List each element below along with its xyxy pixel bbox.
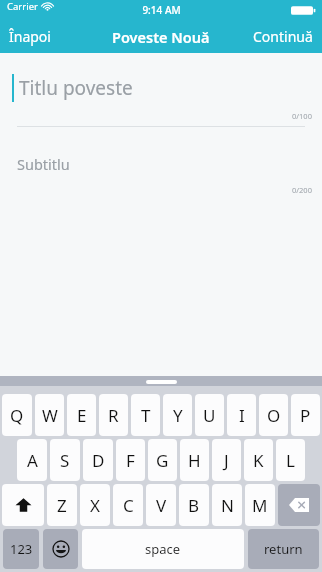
staticText: 0/100 (292, 111, 312, 121)
button[interactable]: Q (2, 394, 32, 436)
staticText: Poveste Nouă (112, 27, 210, 47)
staticText: L (286, 449, 295, 472)
button[interactable]: J (212, 439, 241, 481)
staticText: C (123, 494, 134, 517)
staticText: Q (10, 404, 24, 427)
button[interactable]: P (291, 394, 320, 436)
staticText: Y (173, 404, 183, 427)
staticText: Continuă (253, 27, 313, 46)
staticText: I (239, 404, 245, 427)
staticText: B (188, 494, 200, 517)
button[interactable]: W (35, 394, 64, 436)
staticText: Titlu poveste (19, 75, 133, 101)
button[interactable]: X (80, 484, 110, 526)
staticText: A (27, 449, 38, 472)
staticText: Carrier (7, 0, 38, 13)
staticText: return (264, 540, 303, 558)
button[interactable]: I (227, 394, 256, 436)
button[interactable]: Subtitlu (0, 127, 322, 200)
staticText: W (42, 404, 58, 427)
button[interactable]: return (248, 529, 319, 569)
staticText: H (188, 449, 201, 472)
staticText: Subtitlu (17, 154, 70, 174)
staticText: U (203, 404, 216, 427)
button[interactable]: Titlu poveste (0, 53, 322, 126)
button[interactable]: O (259, 394, 288, 436)
staticText: K (253, 449, 264, 472)
button[interactable]: Shift (2, 484, 44, 526)
button[interactable]: S (50, 439, 80, 481)
staticText: J (224, 449, 229, 472)
button[interactable]: N (212, 484, 242, 526)
staticText: 9:14 AM (142, 3, 181, 17)
staticText: 123 (10, 540, 33, 558)
staticText: T (141, 404, 151, 427)
button[interactable]: V (146, 484, 176, 526)
button[interactable]: Y (163, 394, 192, 436)
button[interactable]: Continuă (244, 21, 322, 52)
staticText: D (92, 449, 105, 472)
button[interactable]: G (148, 439, 177, 481)
button[interactable]: U (195, 394, 224, 436)
button[interactable]: Backspace (278, 484, 320, 526)
staticText: R (108, 404, 119, 427)
staticText: N (221, 494, 234, 517)
button[interactable]: K (244, 439, 273, 481)
button[interactable]: T (131, 394, 160, 436)
staticText: G (156, 449, 169, 472)
staticText: S (60, 449, 70, 472)
staticText: V (156, 494, 167, 517)
button[interactable]: D (83, 439, 113, 481)
button[interactable]: E (67, 394, 96, 436)
button[interactable]: C (113, 484, 143, 526)
button[interactable]: B (179, 484, 209, 526)
button[interactable]: Înapoi (0, 21, 60, 52)
staticText: M (252, 494, 268, 517)
staticText: O (267, 404, 281, 427)
button[interactable]: space (82, 529, 244, 569)
staticText: Z (57, 494, 67, 517)
staticText: Înapoi (9, 27, 51, 46)
button[interactable]: F (116, 439, 145, 481)
button[interactable]: Hide keyboard (146, 380, 177, 384)
button[interactable]: Z (47, 484, 77, 526)
staticText: E (77, 404, 87, 427)
button[interactable]: Emoji (43, 529, 78, 569)
button[interactable]: R (99, 394, 128, 436)
button[interactable]: L (276, 439, 305, 481)
staticText: 0/200 (292, 185, 312, 195)
button[interactable]: 123 (3, 529, 39, 569)
button[interactable]: H (180, 439, 209, 481)
button[interactable]: A (17, 439, 47, 481)
button[interactable]: M (245, 484, 275, 526)
staticText: F (126, 449, 135, 472)
staticText: X (90, 494, 100, 517)
staticText: P (300, 404, 311, 427)
staticText: space (145, 540, 181, 558)
